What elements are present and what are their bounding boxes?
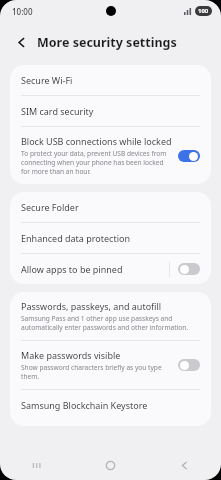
button[interactable]: Switch off: [178, 263, 200, 275]
staticText: Block USB connections while locked: [21, 135, 172, 147]
staticText: More security settings: [37, 34, 177, 51]
button[interactable]: Enhanced data protection: [10, 223, 211, 253]
button[interactable]: Secure Wi-Fi: [10, 65, 211, 95]
staticText: Enhanced data protection: [21, 232, 130, 244]
button[interactable]: Passwords, passkeys, and autofill: [10, 292, 211, 340]
staticText: Secure Wi-Fi: [21, 74, 73, 86]
button[interactable]: Allow apps to be pinned: [10, 254, 211, 284]
staticText: 10:00: [12, 6, 33, 17]
staticText: Show password characters briefly as you …: [21, 363, 172, 381]
button[interactable]: Back: [10, 31, 32, 53]
staticText: SIM card security: [21, 105, 94, 117]
staticText: Make passwords visible: [21, 349, 121, 361]
button[interactable]: SIM card security: [10, 96, 211, 126]
staticText: Samsung Pass and 1 other app use passkey…: [21, 314, 200, 332]
staticText: Allow apps to be pinned: [21, 263, 123, 275]
button[interactable]: Home: [73, 450, 147, 480]
button[interactable]: Switch off: [178, 359, 200, 371]
staticText: Secure Folder: [21, 201, 79, 213]
button[interactable]: Block USB connections while locked: [10, 127, 211, 184]
staticText: Samsung Blockchain Keystore: [21, 399, 148, 411]
button[interactable]: Secure Folder: [10, 192, 211, 222]
staticText: 100: [198, 7, 209, 15]
button[interactable]: Samsung Blockchain Keystore: [10, 390, 211, 420]
button[interactable]: Recents: [0, 450, 73, 480]
staticText: Passwords, passkeys, and autofill: [21, 300, 162, 312]
button[interactable]: Back: [147, 450, 221, 480]
staticText: To protect your data, prevent USB device…: [21, 149, 172, 176]
button[interactable]: Make passwords visible: [10, 341, 211, 389]
button[interactable]: Switch on: [178, 150, 200, 162]
